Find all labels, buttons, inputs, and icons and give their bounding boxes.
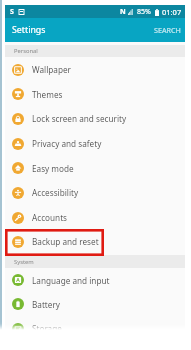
staticText: SEARCH	[154, 25, 181, 35]
staticText: Accessibility	[32, 187, 79, 198]
staticText: Battery	[32, 299, 61, 310]
button[interactable]: Lock screen and security	[5, 106, 185, 131]
button[interactable]: Backup and reset	[5, 229, 185, 254]
button[interactable]: Accounts	[5, 205, 185, 230]
staticText: Themes	[32, 89, 63, 100]
staticText: Lock screen and security	[32, 113, 127, 124]
button[interactable]: Storage	[5, 316, 185, 341]
staticText: N	[120, 7, 126, 17]
staticText: Storage	[32, 323, 62, 334]
staticText: System	[14, 258, 34, 266]
button[interactable]: Language and input	[5, 268, 185, 292]
staticText: 01:07	[162, 7, 182, 17]
staticText: Accounts	[32, 212, 68, 223]
button[interactable]: Battery	[5, 292, 185, 316]
staticText: S	[10, 7, 14, 17]
staticText: Privacy and safety	[32, 138, 102, 149]
staticText: Easy mode	[32, 163, 74, 174]
staticText: Backup and reset	[32, 236, 99, 247]
staticText: Wallpaper	[32, 64, 71, 75]
button[interactable]: Privacy and safety	[5, 131, 185, 156]
button[interactable]: Easy mode	[5, 156, 185, 180]
staticText: Language and input	[32, 275, 110, 286]
staticText: 85%	[137, 7, 151, 17]
button[interactable]: Accessibility	[5, 180, 185, 205]
button[interactable]: SEARCH	[149, 19, 185, 41]
button[interactable]: Themes	[5, 82, 185, 106]
button[interactable]: Wallpaper	[5, 57, 185, 82]
staticText: Settings	[12, 24, 46, 36]
staticText: Personal	[14, 47, 38, 55]
